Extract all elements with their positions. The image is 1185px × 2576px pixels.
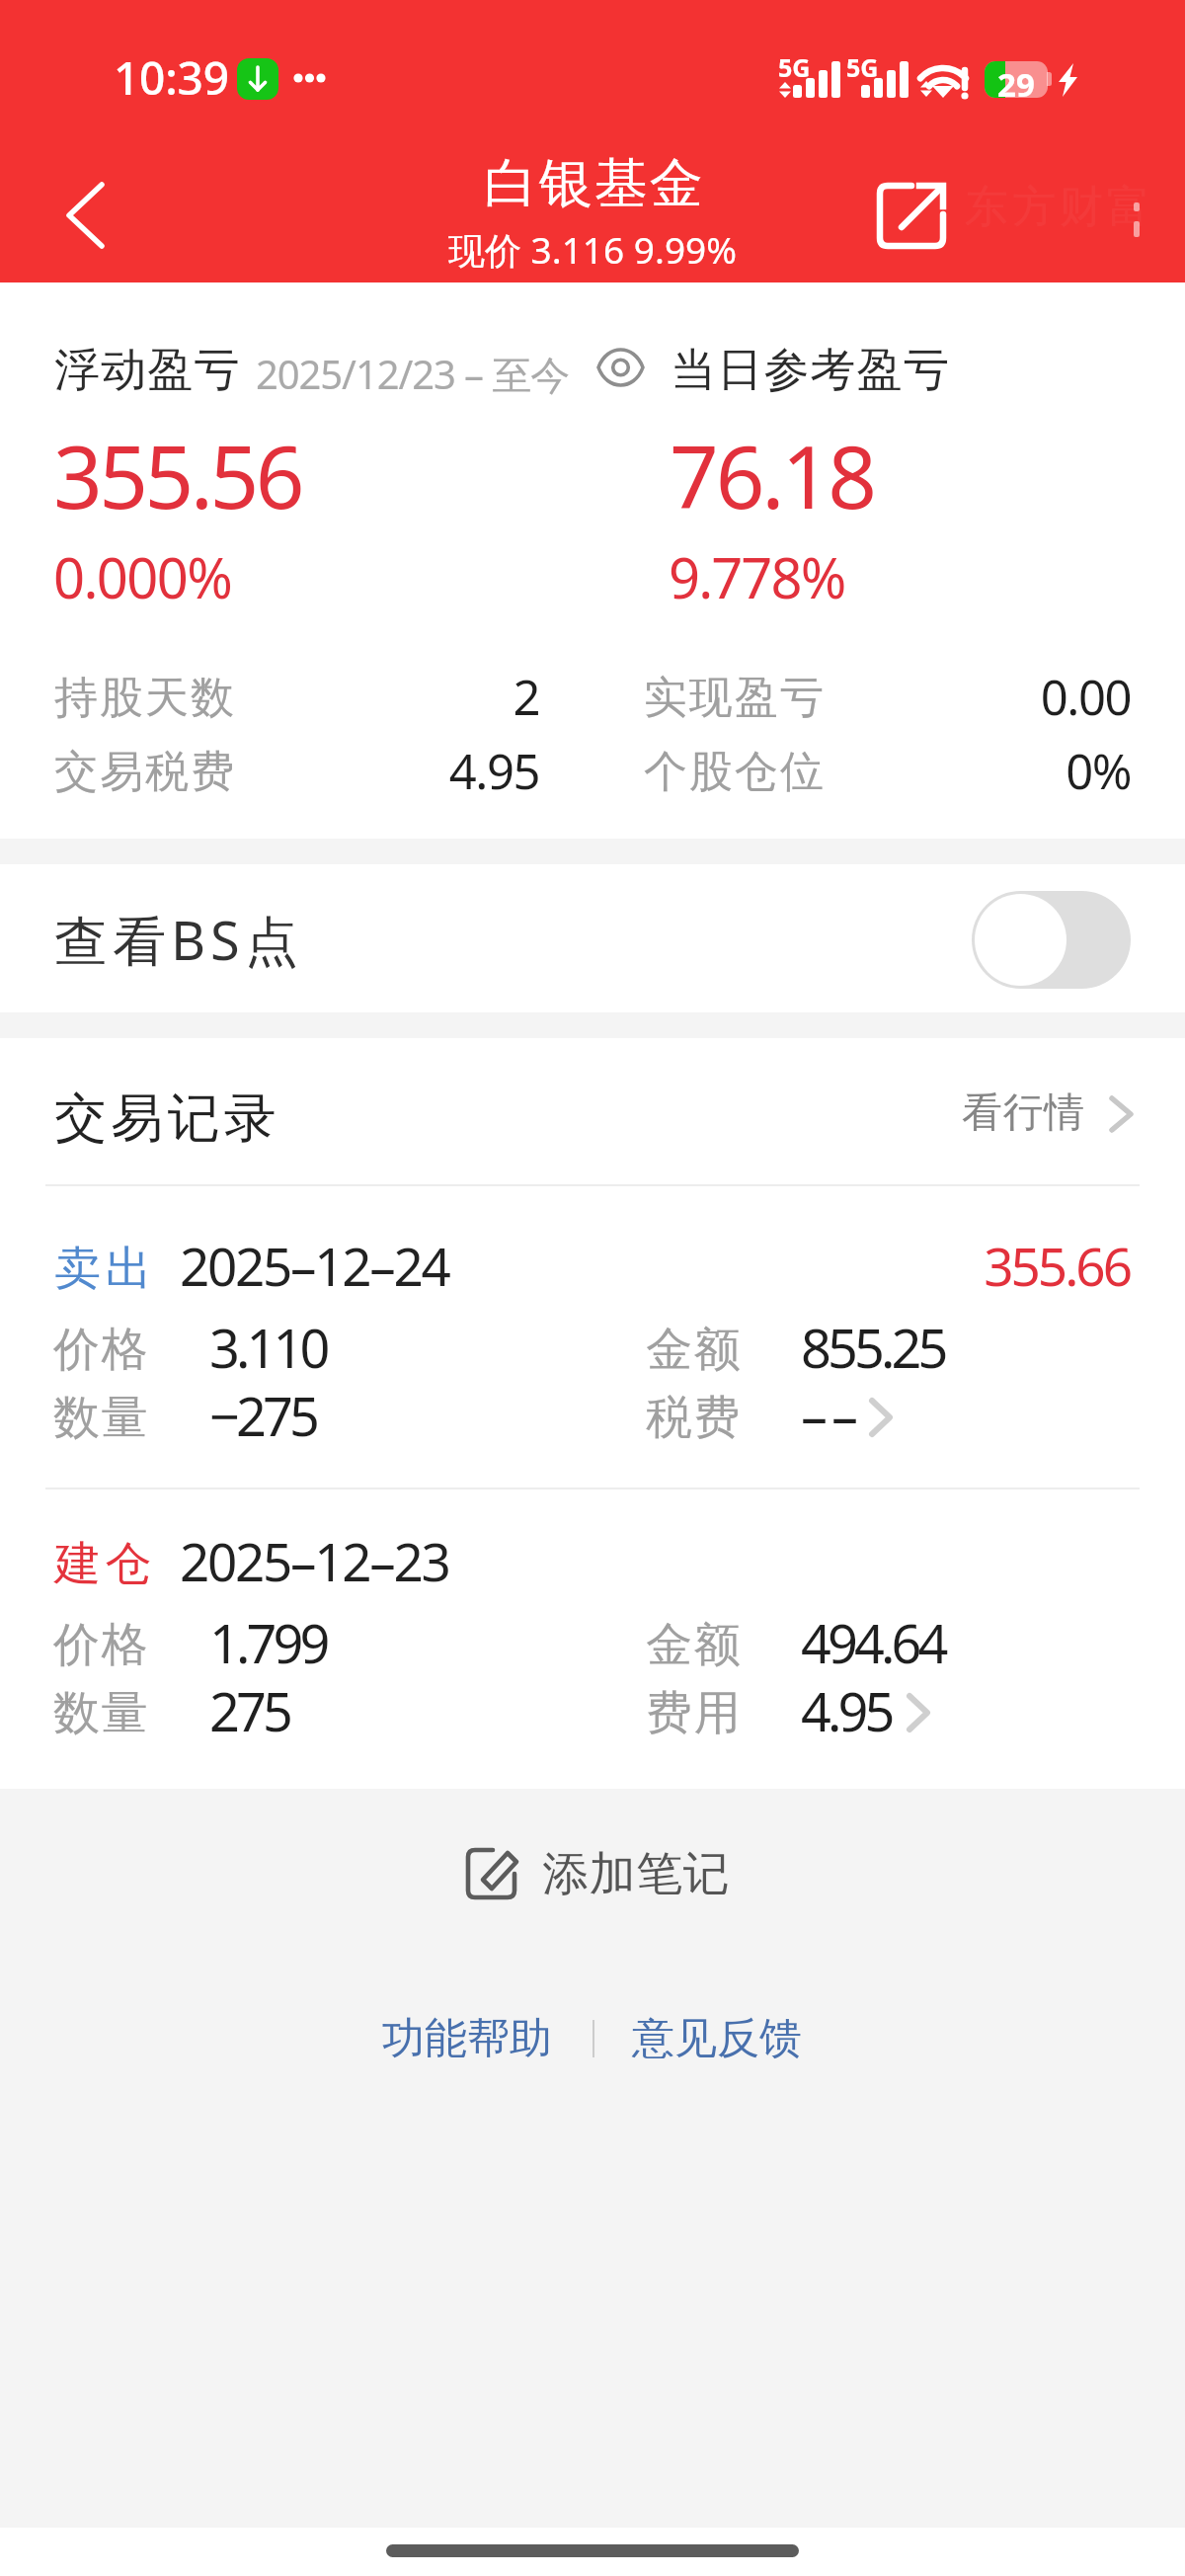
staticText: 0% [889, 738, 1131, 804]
button[interactable]: 看行情 [948, 1077, 1141, 1156]
staticText: 4.95 [296, 738, 539, 804]
staticText: 1.799 [209, 1606, 327, 1679]
staticText: 9.778% [669, 539, 845, 614]
staticText: 数量 [53, 1684, 149, 1742]
button[interactable]: Toggle visibility [590, 338, 652, 397]
staticText: 建仓 [54, 1535, 157, 1593]
button[interactable]: 卖出 [0, 1185, 1185, 1489]
staticText: 数量 [53, 1389, 149, 1447]
button[interactable]: 查看BS点 [0, 864, 1185, 1012]
staticText: 功能帮助 [382, 2012, 552, 2065]
staticText: 金额 [646, 1616, 742, 1674]
staticText: 价格 [53, 1321, 149, 1379]
staticText: 当日参考盈亏 [671, 342, 951, 399]
staticText: 个股仓位 [643, 745, 825, 799]
staticText: 0.00 [889, 664, 1131, 730]
button[interactable]: 添加笔记 [449, 1821, 744, 1904]
staticText: 76.18 [670, 417, 874, 533]
button[interactable]: Share [857, 156, 966, 275]
staticText: 4.95 [801, 1674, 892, 1747]
staticText: −275 [209, 1379, 316, 1452]
button[interactable]: 建仓 [0, 1481, 1185, 1784]
staticText: 意见反馈 [632, 2012, 802, 2065]
staticText: 浮动盈亏 [54, 342, 241, 399]
staticText: 持股天数 [53, 671, 235, 725]
staticText: 交易税费 [53, 745, 235, 799]
staticText: 看行情 [962, 1087, 1085, 1139]
staticText: 5G [778, 50, 811, 84]
staticText: –– [801, 1379, 862, 1452]
staticText: 355.56 [53, 417, 302, 533]
staticText: 0.000% [53, 539, 232, 614]
staticText: 2025/12/23 – 至今 [256, 347, 570, 401]
staticText: 29 [997, 62, 1035, 99]
staticText: 添加笔记 [542, 1845, 730, 1903]
button[interactable]: Back [27, 156, 145, 275]
staticText: 现价 3.116 9.99% [448, 224, 737, 275]
staticText: 税费 [646, 1389, 742, 1447]
staticText: 交易记录 [54, 1086, 280, 1152]
staticText: 金额 [646, 1321, 742, 1379]
staticText: 东方财富 [963, 180, 1152, 234]
staticText: 494.64 [801, 1606, 945, 1679]
staticText: 2 [296, 664, 539, 730]
staticText: 费用 [646, 1684, 742, 1742]
staticText: 2025–12–24 [180, 1230, 449, 1301]
staticText: 实现盈亏 [643, 671, 825, 725]
staticText: 855.25 [801, 1311, 945, 1384]
staticText: 355.66 [834, 1230, 1130, 1301]
staticText: 5G [846, 50, 879, 84]
staticText: 白银基金 [483, 150, 704, 217]
staticText: 275 [209, 1674, 289, 1747]
button[interactable]: 功能帮助 [367, 2001, 567, 2076]
staticText: 10:39 [114, 46, 229, 109]
button[interactable]: 意见反馈 [617, 2001, 817, 2076]
staticText: 2025–12–23 [180, 1525, 449, 1596]
staticText: 卖出 [54, 1240, 157, 1298]
staticText: 价格 [53, 1616, 149, 1674]
staticText: 3.110 [209, 1311, 327, 1384]
staticText: 查看BS点 [54, 903, 303, 976]
